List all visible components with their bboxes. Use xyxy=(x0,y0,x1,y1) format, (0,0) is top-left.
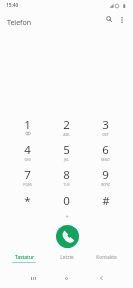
button[interactable]: 3 xyxy=(86,117,125,142)
staticText: # xyxy=(102,193,110,209)
staticText: PQRS xyxy=(23,182,32,187)
button[interactable]: 9 xyxy=(86,167,125,192)
button[interactable]: 5 xyxy=(47,142,86,167)
staticText: TUV xyxy=(63,182,70,187)
staticText: + xyxy=(65,213,69,220)
staticText: GHI xyxy=(24,157,31,162)
button[interactable]: Search xyxy=(102,12,116,25)
staticText: * xyxy=(24,193,31,209)
button[interactable]: Tastatur xyxy=(3,250,45,266)
button[interactable]: 1 xyxy=(8,117,47,142)
staticText: 0 xyxy=(63,193,70,209)
button[interactable]: 6 xyxy=(86,142,125,167)
staticText: WXYZ xyxy=(101,182,110,187)
staticText: 15:40 xyxy=(6,2,19,9)
button[interactable]: * xyxy=(8,193,47,218)
button[interactable]: More options xyxy=(115,13,128,26)
button[interactable]: 0 xyxy=(47,193,86,218)
button[interactable]: 8 xyxy=(47,167,86,192)
button[interactable]: Kontakte xyxy=(85,250,127,266)
staticText: Telefon xyxy=(7,18,32,28)
staticText: Letzte xyxy=(60,254,74,261)
button[interactable]: # xyxy=(86,193,125,218)
staticText: 6 xyxy=(102,142,109,158)
staticText: JKL xyxy=(64,157,69,162)
staticText: 9 xyxy=(102,167,109,183)
staticText: DEF xyxy=(102,132,109,137)
staticText: ABC xyxy=(63,132,70,137)
button[interactable]: 7 xyxy=(8,167,47,192)
staticText: 1 xyxy=(24,117,31,133)
button[interactable]: Letzte xyxy=(46,250,88,266)
staticText: 8 xyxy=(63,167,70,183)
button[interactable]: Home xyxy=(58,268,74,288)
button[interactable]: 2 xyxy=(47,117,86,142)
staticText: 5 xyxy=(63,142,70,158)
button[interactable]: Call xyxy=(56,225,79,248)
staticText: Tastatur xyxy=(15,254,34,261)
staticText: MNO xyxy=(101,157,110,162)
staticText: Kontakte xyxy=(96,254,117,261)
staticText: 2 xyxy=(63,117,70,133)
button[interactable]: Recent apps xyxy=(25,268,41,288)
staticText: 7 xyxy=(24,167,31,183)
staticText: 4 xyxy=(24,142,31,158)
staticText: 3 xyxy=(102,117,109,133)
button[interactable]: Back xyxy=(93,268,109,288)
button[interactable]: 4 xyxy=(8,142,47,167)
